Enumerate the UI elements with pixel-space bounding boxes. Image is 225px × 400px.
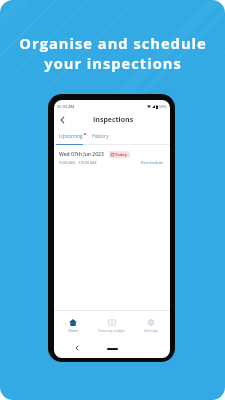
staticText: your inspections	[44, 53, 182, 73]
staticText: Settings	[144, 328, 158, 333]
staticText: History	[92, 133, 109, 140]
staticText: Tenancy Ledger	[98, 328, 126, 333]
staticText: Inspections	[93, 115, 134, 125]
button[interactable]: Settings	[131, 317, 170, 335]
staticText: Today	[115, 152, 128, 157]
staticText: Upcoming	[59, 133, 83, 140]
staticText: Wed 07th Jun 2023	[59, 151, 104, 158]
button[interactable]: History	[92, 133, 109, 140]
button[interactable]: Home	[54, 317, 92, 335]
staticText: 58%	[159, 104, 167, 109]
button[interactable]: Tenancy Ledger	[92, 317, 131, 335]
staticText: 9:00 AM - 10:00 AM	[59, 160, 97, 166]
button[interactable]: Reschedule	[141, 160, 164, 166]
staticText: Reschedule	[141, 160, 164, 166]
staticText: Organise and schedule	[19, 33, 207, 53]
other: Back	[73, 344, 80, 351]
staticText: Home	[68, 328, 79, 333]
button[interactable]: Back	[57, 115, 67, 125]
staticText: 00:00 AM	[57, 104, 75, 109]
button[interactable]: Wed 07th Jun 2023	[54, 147, 170, 170]
button[interactable]: Upcoming	[59, 133, 86, 140]
